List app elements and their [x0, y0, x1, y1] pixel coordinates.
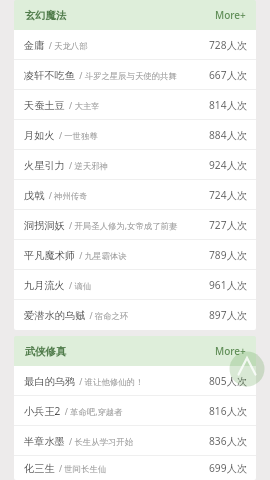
- staticText: 平凡魔术师 / 九星霸体诀: [24, 249, 127, 262]
- staticText: 924人次: [209, 158, 247, 172]
- button[interactable]: 九月流火 / 谪仙: [14, 270, 256, 300]
- button[interactable]: 平凡魔术师 / 九星霸体诀: [14, 240, 256, 270]
- button[interactable]: 武侠修真: [14, 339, 73, 364]
- staticText: 836人次: [209, 434, 247, 448]
- staticText: 884人次: [209, 128, 247, 142]
- staticText: More+: [215, 344, 246, 358]
- button[interactable]: 月如火 / 一世独尊: [14, 120, 256, 150]
- button[interactable]: 火星引力 / 逆天邪神: [14, 150, 256, 180]
- button[interactable]: 化三生 / 世间长生仙: [14, 456, 256, 480]
- button[interactable]: 洞拐洞妖 / 开局圣人修为,女帝成了前妻: [14, 210, 256, 240]
- button[interactable]: 天蚕土豆 / 大主宰: [14, 90, 256, 120]
- button[interactable]: 玄幻魔法: [14, 3, 73, 28]
- staticText: 724人次: [209, 188, 247, 202]
- staticText: 805人次: [209, 374, 247, 388]
- staticText: 九月流火 / 谪仙: [24, 279, 92, 292]
- button[interactable]: 最白的乌鸦 / 谁让他修仙的！: [14, 366, 256, 396]
- staticText: 961人次: [209, 278, 247, 292]
- staticText: 728人次: [209, 38, 247, 52]
- staticText: 化三生 / 世间长生仙: [24, 462, 107, 475]
- staticText: 727人次: [209, 218, 247, 232]
- staticText: 武侠修真: [25, 345, 67, 358]
- staticText: 最白的乌鸦 / 谁让他修仙的！: [24, 375, 144, 388]
- button[interactable]: 凌轩不吃鱼 / 斗罗之星辰与天使的共舞: [14, 60, 256, 90]
- staticText: 金庸 / 天龙八部: [24, 39, 88, 52]
- staticText: 火星引力 / 逆天邪神: [24, 159, 108, 172]
- staticText: 洞拐洞妖 / 开局圣人修为,女帝成了前妻: [24, 219, 178, 232]
- staticText: 凌轩不吃鱼 / 斗罗之星辰与天使的共舞: [24, 69, 177, 82]
- staticText: 半章水墨 / 长生从学习开始: [24, 435, 134, 448]
- staticText: 戊戟 / 神州传奇: [24, 189, 88, 202]
- staticText: More+: [215, 8, 246, 22]
- staticText: 699人次: [209, 461, 247, 475]
- button[interactable]: More+: [209, 338, 256, 364]
- staticText: 789人次: [209, 248, 247, 262]
- staticText: 小兵王2 / 革命吧,穿越者: [24, 404, 123, 418]
- staticText: 816人次: [209, 404, 247, 418]
- button[interactable]: 金庸 / 天龙八部: [14, 30, 256, 60]
- button[interactable]: 戊戟 / 神州传奇: [14, 180, 256, 210]
- button[interactable]: 半章水墨 / 长生从学习开始: [14, 426, 256, 456]
- button[interactable]: 小兵王2 / 革命吧,穿越者: [14, 396, 256, 426]
- staticText: 814人次: [209, 98, 247, 112]
- staticText: 667人次: [209, 68, 247, 82]
- staticText: 月如火 / 一世独尊: [24, 129, 98, 142]
- button[interactable]: More+: [209, 2, 256, 28]
- staticText: 897人次: [209, 308, 247, 322]
- button[interactable]: 爱潜水的乌贼 / 宿命之环: [14, 300, 256, 330]
- staticText: 爱潜水的乌贼 / 宿命之环: [24, 309, 129, 322]
- staticText: 玄幻魔法: [25, 9, 67, 22]
- staticText: 天蚕土豆 / 大主宰: [24, 99, 100, 112]
- other: Watermark: [0, 0, 270, 480]
